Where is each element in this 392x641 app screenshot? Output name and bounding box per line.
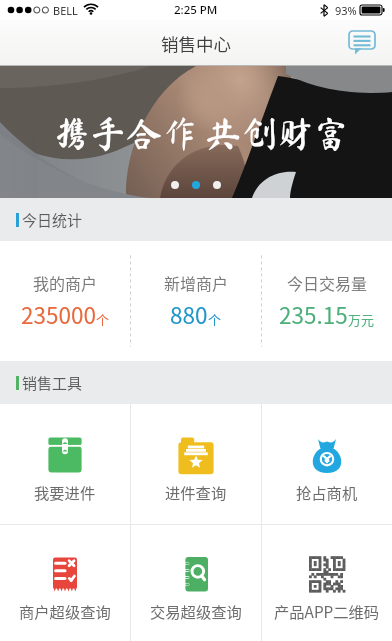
staticText: 产品APP二维码 xyxy=(274,600,380,622)
staticText: 今日交易量 xyxy=(287,271,368,294)
staticText: 交易超级查询 xyxy=(150,600,242,622)
button[interactable]: Messages xyxy=(345,28,379,58)
button[interactable]: 我的商户 xyxy=(0,241,130,361)
button[interactable]: 今日交易量 xyxy=(262,241,392,361)
button[interactable]: 商户超级查询 xyxy=(0,530,130,641)
button[interactable]: 新增商户 xyxy=(131,241,261,361)
button[interactable]: 抢占商机 xyxy=(262,409,392,529)
staticText: 235000 xyxy=(21,298,96,331)
staticText: 万元 xyxy=(348,310,375,329)
staticText: 2:25 PM xyxy=(174,2,218,18)
staticText: 销售工具 xyxy=(22,372,83,394)
staticText: 个 xyxy=(208,310,222,329)
staticText: 新增商户 xyxy=(164,271,229,294)
staticText: 235.15 xyxy=(279,298,348,331)
staticText: 今日统计 xyxy=(22,209,83,231)
button[interactable]: 交易超级查询 xyxy=(131,530,261,641)
staticText: BELL xyxy=(53,3,78,18)
staticText: 93% xyxy=(335,3,357,18)
button[interactable]: 进件查询 xyxy=(131,409,261,529)
staticText: 销售中心 xyxy=(161,31,231,56)
button[interactable]: 产品APP二维码 xyxy=(262,530,392,641)
staticText: 抢占商机 xyxy=(296,481,358,503)
staticText: 880 xyxy=(170,298,208,331)
staticText: 携手合作 共创财富 xyxy=(54,115,350,151)
button[interactable]: 我要进件 xyxy=(0,409,130,529)
staticText: 商户超级查询 xyxy=(19,600,111,622)
staticText: 进件查询 xyxy=(165,481,227,503)
staticText: 个 xyxy=(96,310,110,329)
staticText: 我的商户 xyxy=(33,271,98,294)
staticText: 我要进件 xyxy=(34,481,96,503)
